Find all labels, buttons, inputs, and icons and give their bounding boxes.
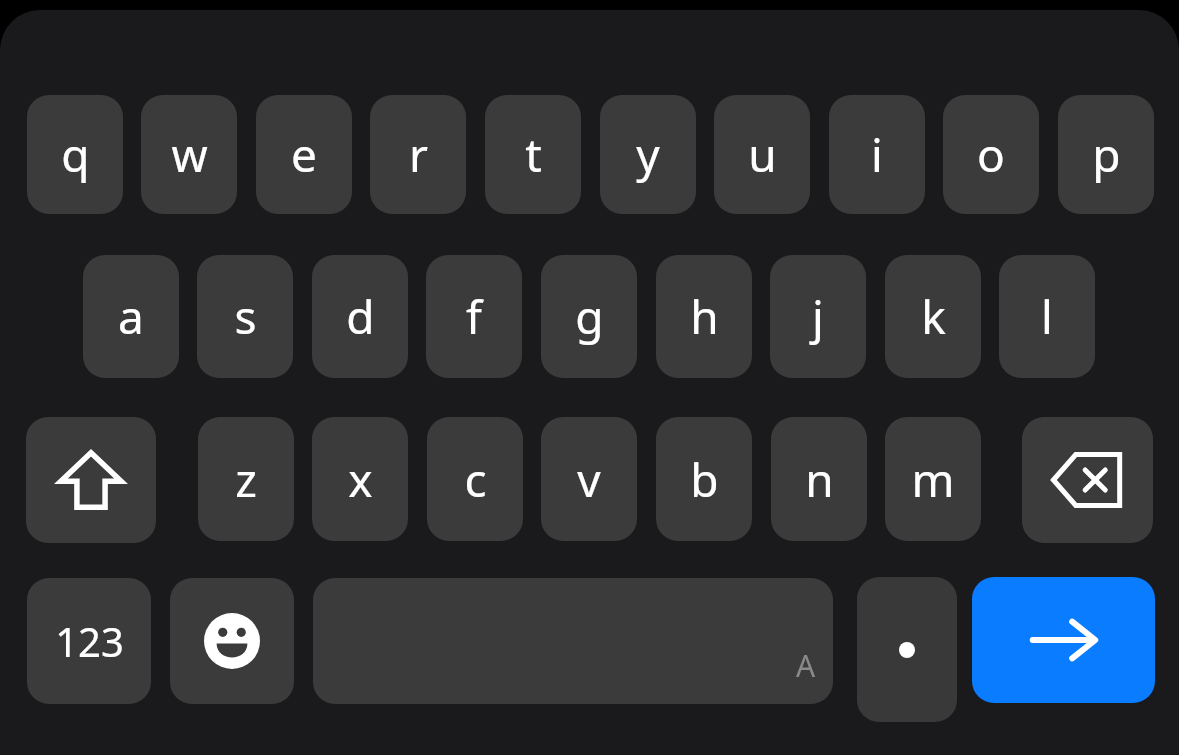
staticText: g: [575, 285, 604, 348]
button[interactable]: w: [141, 95, 237, 214]
staticText: e: [291, 123, 317, 186]
button[interactable]: q: [27, 95, 123, 214]
staticText: f: [466, 285, 482, 348]
button[interactable]: 123: [27, 578, 151, 704]
staticText: w: [171, 123, 208, 186]
staticText: c: [464, 448, 487, 511]
button[interactable]: Emoji: [170, 578, 294, 704]
button[interactable]: e: [256, 95, 352, 214]
button[interactable]: g: [541, 255, 637, 378]
button[interactable]: Shift: [26, 417, 156, 543]
staticText: l: [1041, 285, 1053, 348]
button[interactable]: y: [600, 95, 696, 214]
staticText: x: [348, 448, 373, 511]
staticText: m: [911, 448, 955, 511]
button[interactable]: a: [83, 255, 179, 378]
button[interactable]: Backspace: [1022, 417, 1153, 543]
button[interactable]: z: [198, 417, 294, 541]
staticText: k: [921, 285, 946, 348]
staticText: 123: [55, 614, 124, 668]
staticText: p: [1092, 123, 1121, 186]
button[interactable]: p: [1058, 95, 1154, 214]
button[interactable]: Enter: [972, 577, 1155, 703]
staticText: i: [871, 123, 883, 186]
button[interactable]: v: [541, 417, 637, 541]
button[interactable]: o: [943, 95, 1039, 214]
button[interactable]: u: [714, 95, 810, 214]
staticText: t: [525, 123, 542, 186]
button[interactable]: c: [427, 417, 523, 541]
button[interactable]: s: [197, 255, 293, 378]
button[interactable]: n: [771, 417, 867, 541]
staticText: j: [812, 285, 824, 348]
button[interactable]: b: [656, 417, 752, 541]
staticText: s: [234, 285, 257, 348]
staticText: v: [577, 448, 601, 511]
staticText: n: [805, 448, 834, 511]
button[interactable]: t: [485, 95, 581, 214]
staticText: y: [636, 123, 660, 186]
button[interactable]: f: [426, 255, 522, 378]
staticText: r: [409, 123, 428, 186]
staticText: q: [61, 123, 90, 186]
button[interactable]: r: [370, 95, 466, 214]
button[interactable]: h: [656, 255, 752, 378]
button[interactable]: d: [312, 255, 408, 378]
button[interactable]: l: [999, 255, 1095, 378]
staticText: a: [118, 285, 144, 348]
staticText: o: [977, 123, 1005, 186]
button[interactable]: j: [770, 255, 866, 378]
button[interactable]: m: [885, 417, 981, 541]
staticText: d: [346, 285, 375, 348]
staticText: h: [690, 285, 719, 348]
button[interactable]: k: [885, 255, 981, 378]
button[interactable]: i: [829, 95, 925, 214]
button[interactable]: Space: [313, 578, 833, 704]
staticText: A: [796, 645, 816, 686]
button[interactable]: x: [312, 417, 408, 541]
staticText: z: [235, 448, 257, 511]
staticText: b: [690, 448, 719, 511]
button[interactable]: Period: [857, 577, 957, 722]
staticText: u: [748, 123, 777, 186]
